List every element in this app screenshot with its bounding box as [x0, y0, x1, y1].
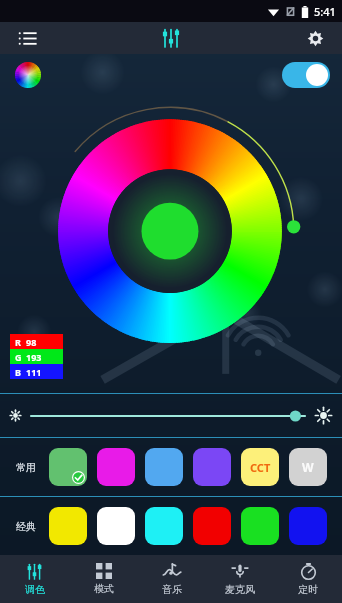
staticText: 经典 [16, 520, 36, 533]
button[interactable]: 定时 [274, 555, 342, 603]
staticText: 111 [26, 366, 42, 378]
staticText: 193 [26, 351, 42, 363]
button[interactable]: 常用 colour 3 [145, 448, 183, 486]
staticText: 常用 [16, 461, 36, 474]
button[interactable]: 模式 [69, 555, 138, 603]
staticText: 定时 [298, 583, 318, 596]
button[interactable]: 调色 [0, 555, 69, 603]
button[interactable]: 常用 colour 4 [193, 448, 231, 486]
staticText: 音乐 [162, 583, 182, 596]
button[interactable]: 经典 colour 2 [97, 507, 135, 545]
button[interactable]: 麦克风 [206, 555, 274, 603]
button[interactable]: List [12, 23, 42, 53]
staticText: CCT [250, 460, 271, 475]
staticText: 模式 [94, 582, 114, 595]
button[interactable]: 常用 colour 5 [241, 448, 279, 486]
button[interactable]: 经典 colour 3 [145, 507, 183, 545]
button[interactable]: Power toggle [282, 62, 330, 88]
button[interactable]: 常用 colour 2 [97, 448, 135, 486]
staticText: 麦克风 [225, 583, 255, 596]
button[interactable]: 经典 colour 6 [289, 507, 327, 545]
button[interactable]: Color picker [14, 61, 42, 89]
button[interactable]: 经典 colour 1 [49, 507, 87, 545]
staticText: G [15, 351, 22, 363]
button[interactable]: Brightness slider [31, 402, 305, 430]
staticText: 5:41 [314, 4, 336, 19]
staticText: 调色 [25, 583, 45, 596]
button[interactable]: 常用 colour 1 [49, 448, 87, 486]
staticText: R [15, 336, 21, 348]
button[interactable]: Settings [300, 23, 330, 53]
button[interactable]: 经典 colour 4 [193, 507, 231, 545]
button[interactable]: Color adjust [154, 22, 188, 54]
button[interactable]: 音乐 [138, 555, 206, 603]
button[interactable]: 常用 colour 6 [289, 448, 327, 486]
button[interactable]: 经典 colour 5 [241, 507, 279, 545]
staticText: W [302, 459, 314, 475]
staticText: B [15, 366, 21, 378]
staticText: 98 [26, 336, 37, 348]
